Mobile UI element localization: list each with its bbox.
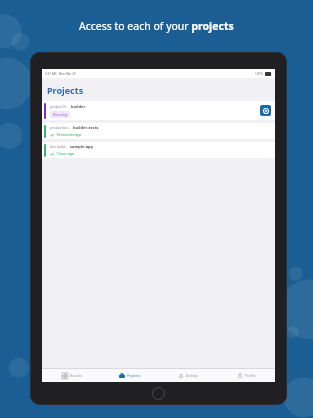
staticText: builder-tests [73,125,99,130]
staticText: production - [50,125,71,130]
staticText: Projects [127,373,141,378]
staticText: builder [71,104,86,109]
staticText: Profile [245,373,256,378]
staticText: dev build - [50,144,68,149]
button[interactable]: Boards [42,369,101,382]
button[interactable]: Open project [260,105,271,116]
staticText: Boards [70,373,82,378]
button[interactable]: dev build - [42,142,275,158]
staticText: 9:41 AM Mon Mar 20 [45,72,76,76]
staticText: Access to each of your projects [79,19,234,33]
button[interactable]: Profile [217,369,275,382]
staticText: sample-app [70,144,94,149]
button[interactable]: project 01 - [42,101,275,120]
button[interactable]: production - [42,123,275,139]
button[interactable]: Projects [101,369,159,382]
staticText: project 01 - [50,104,69,109]
staticText: Activity [186,373,198,378]
staticText: 14 minutes ago [56,132,82,137]
staticText: Projects [47,84,84,96]
button[interactable]: Activity [159,369,217,382]
staticText: Running [53,112,67,117]
staticText: 1 hour ago [56,151,74,156]
staticText: 100% [255,72,263,76]
